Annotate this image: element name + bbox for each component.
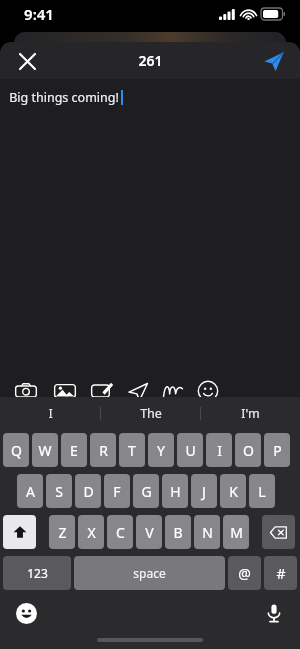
button[interactable]: Location (127, 380, 149, 402)
button[interactable]: Z (49, 515, 75, 549)
button[interactable]: R (90, 433, 116, 467)
staticText: V (145, 523, 154, 542)
staticText: I (217, 441, 222, 460)
staticText: space (133, 565, 166, 581)
button[interactable]: D (75, 474, 101, 508)
staticText: I (48, 405, 53, 422)
button[interactable]: Shift (3, 515, 36, 549)
button[interactable]: Close (10, 44, 44, 78)
staticText: R (99, 441, 108, 460)
staticText: P (273, 441, 282, 460)
button[interactable]: Camera (15, 380, 37, 402)
button[interactable]: C (107, 515, 133, 549)
button[interactable]: W (32, 433, 58, 467)
staticText: E (70, 441, 78, 460)
staticText: T (128, 441, 136, 460)
button[interactable]: K (220, 474, 246, 508)
button[interactable]: U (177, 433, 203, 467)
staticText: M (230, 523, 243, 542)
staticText: B (173, 523, 183, 542)
staticText: Big things coming! (9, 89, 119, 106)
staticText: L (258, 482, 266, 501)
button[interactable]: 123 (3, 556, 71, 590)
staticText: K (229, 482, 238, 501)
staticText: @ (238, 564, 251, 583)
staticText: A (26, 482, 35, 501)
button[interactable]: A (17, 474, 43, 508)
button[interactable]: N (194, 515, 220, 549)
staticText: Z (58, 523, 67, 542)
button[interactable]: L (249, 474, 275, 508)
staticText: 9:41 (24, 4, 54, 24)
button[interactable]: Markup (91, 380, 113, 402)
button[interactable]: X (78, 515, 104, 549)
button[interactable]: I (0, 397, 100, 430)
staticText: F (113, 482, 121, 501)
button[interactable]: Emoji (197, 380, 219, 402)
button[interactable]: Photos (54, 380, 76, 402)
staticText: Y (157, 441, 165, 460)
button[interactable]: I (206, 433, 232, 467)
button[interactable]: Voice input (261, 600, 287, 626)
button[interactable]: Y (148, 433, 174, 467)
button[interactable]: The (101, 397, 200, 430)
staticText: D (83, 482, 94, 501)
button[interactable]: O (235, 433, 261, 467)
button[interactable]: J (191, 474, 217, 508)
button[interactable]: V (136, 515, 162, 549)
button[interactable]: B (165, 515, 191, 549)
staticText: O (243, 441, 254, 460)
button[interactable]: Q (3, 433, 29, 467)
button[interactable]: E (61, 433, 87, 467)
staticText: W (38, 441, 52, 460)
staticText: # (276, 564, 286, 583)
staticText: N (202, 523, 213, 542)
button[interactable]: P (264, 433, 290, 467)
button[interactable]: I'm (201, 397, 300, 430)
staticText: I'm (241, 405, 260, 422)
staticText: Q (11, 441, 22, 460)
staticText: 123 (27, 565, 48, 581)
staticText: U (185, 441, 196, 460)
staticText: The (140, 405, 162, 422)
button[interactable]: Backspace (262, 515, 295, 549)
button[interactable]: F (104, 474, 130, 508)
button[interactable]: S (46, 474, 72, 508)
button[interactable]: T (119, 433, 145, 467)
staticText: C (116, 523, 125, 542)
button[interactable]: H (162, 474, 188, 508)
staticText: H (170, 482, 181, 501)
button[interactable]: Send (256, 44, 290, 78)
button[interactable]: M (223, 515, 249, 549)
button[interactable]: Emoji (13, 600, 39, 626)
button[interactable]: G (133, 474, 159, 508)
button[interactable]: Draw (162, 380, 184, 402)
staticText: 261 (138, 51, 163, 70)
staticText: J (202, 482, 206, 501)
button[interactable]: # (264, 556, 297, 590)
staticText: G (141, 482, 152, 501)
staticText: S (55, 482, 63, 501)
button[interactable]: @ (228, 556, 261, 590)
staticText: X (87, 523, 96, 542)
button[interactable]: space (74, 556, 225, 590)
